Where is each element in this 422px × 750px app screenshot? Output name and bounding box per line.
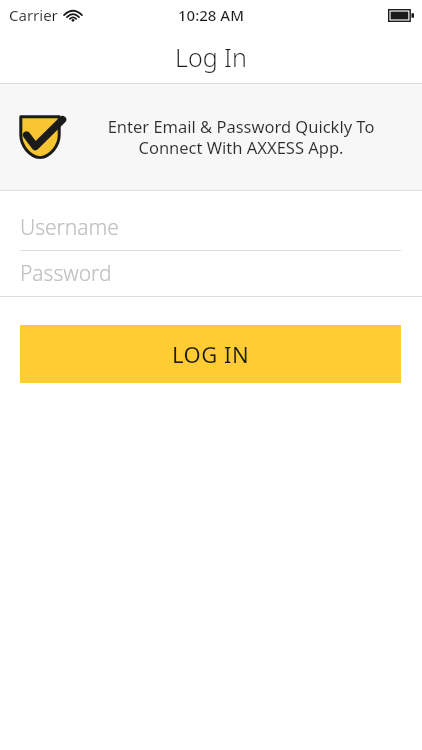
button[interactable]: LOG IN (20, 325, 401, 383)
staticText: LOG IN (172, 339, 250, 369)
staticText: Log In (175, 40, 247, 74)
staticText: 10:28 AM (178, 5, 244, 25)
staticText: Carrier (9, 5, 58, 25)
staticText: Enter Email & Password Quickly To Connec… (82, 115, 400, 159)
staticText: Password (20, 259, 112, 288)
button[interactable]: Password (0, 251, 422, 297)
button[interactable]: Username (0, 205, 422, 251)
staticText: Username (20, 213, 119, 242)
